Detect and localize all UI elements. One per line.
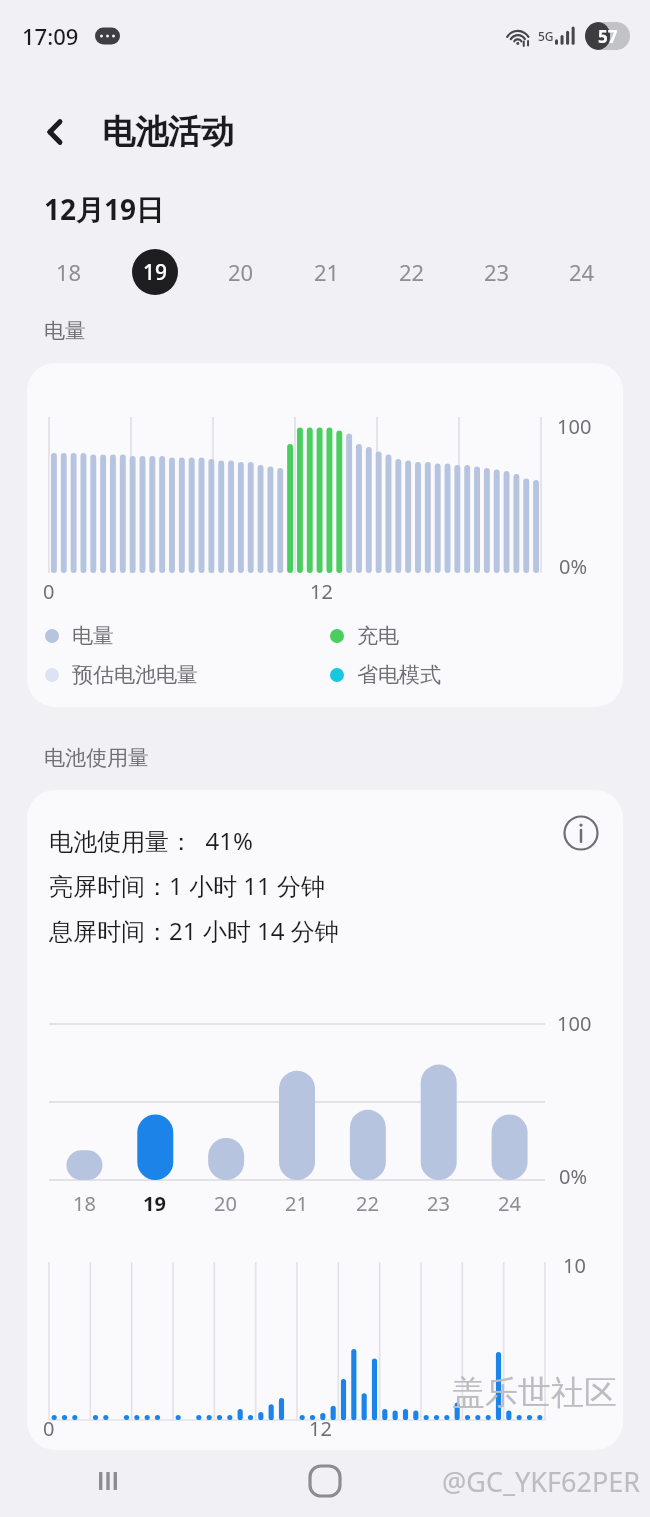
staticText: 23 <box>484 257 510 287</box>
staticText: 充电 <box>357 623 399 649</box>
staticText: 20 <box>214 1190 237 1217</box>
button[interactable]: 电量 <box>45 623 330 649</box>
staticText: 0 <box>43 578 55 605</box>
staticText: 盖乐世社区 <box>452 1372 617 1414</box>
staticText: 19 <box>143 1190 166 1217</box>
staticText: 预估电池电量 <box>72 662 198 688</box>
button[interactable]: 22 <box>369 242 454 302</box>
staticText: 电池使用量 <box>44 745 149 771</box>
staticText: 省电模式 <box>357 662 441 688</box>
button[interactable]: 省电模式 <box>330 662 441 688</box>
staticText: 22 <box>356 1190 379 1217</box>
staticText: 21 <box>314 257 340 287</box>
staticText: 23 <box>427 1190 450 1217</box>
staticText: 22 <box>399 257 425 287</box>
button[interactable]: 24 <box>539 242 624 302</box>
staticText: 57 <box>598 25 618 48</box>
staticText: @GC_YKF62PER <box>442 1463 641 1500</box>
button[interactable]: Recents <box>0 1445 216 1517</box>
staticText: 电池使用量： 41% <box>49 824 253 857</box>
staticText: 0% <box>559 1163 588 1190</box>
button[interactable]: Info <box>557 809 605 857</box>
staticText: 12 <box>309 1415 332 1442</box>
button[interactable]: Back <box>32 108 80 156</box>
button[interactable]: 20 <box>198 242 284 302</box>
staticText: 0% <box>559 553 588 580</box>
staticText: 21 <box>285 1190 308 1217</box>
staticText: 亮屏时间：1 小时 11 分钟 <box>49 869 325 902</box>
button[interactable]: 19 <box>112 242 198 302</box>
staticText: 19 <box>143 258 168 287</box>
staticText: 12月19日 <box>44 190 165 228</box>
staticText: 电池活动 <box>102 111 234 153</box>
button[interactable]: 21 <box>284 242 369 302</box>
staticText: 18 <box>56 257 82 287</box>
staticText: 24 <box>498 1190 521 1217</box>
button[interactable]: 23 <box>454 242 539 302</box>
button[interactable]: 18 <box>26 242 112 302</box>
staticText: 17:09 <box>22 21 79 51</box>
staticText: 20 <box>228 257 254 287</box>
staticText: 电量 <box>44 318 86 344</box>
staticText: 10 <box>563 1252 586 1279</box>
staticText: 息屏时间：21 小时 14 分钟 <box>49 914 339 947</box>
button[interactable]: 预估电池电量 <box>45 662 330 688</box>
staticText: 100 <box>557 413 592 440</box>
staticText: 24 <box>569 257 595 287</box>
staticText: 电量 <box>72 623 114 649</box>
button[interactable]: 充电 <box>330 623 399 649</box>
button[interactable]: 100 <box>27 363 623 707</box>
staticText: 18 <box>73 1190 96 1217</box>
staticText: 100 <box>557 1010 592 1037</box>
staticText: 5G <box>538 28 554 44</box>
staticText: 12 <box>310 578 333 605</box>
staticText: 0 <box>43 1415 55 1442</box>
button[interactable]: Home <box>216 1445 433 1517</box>
